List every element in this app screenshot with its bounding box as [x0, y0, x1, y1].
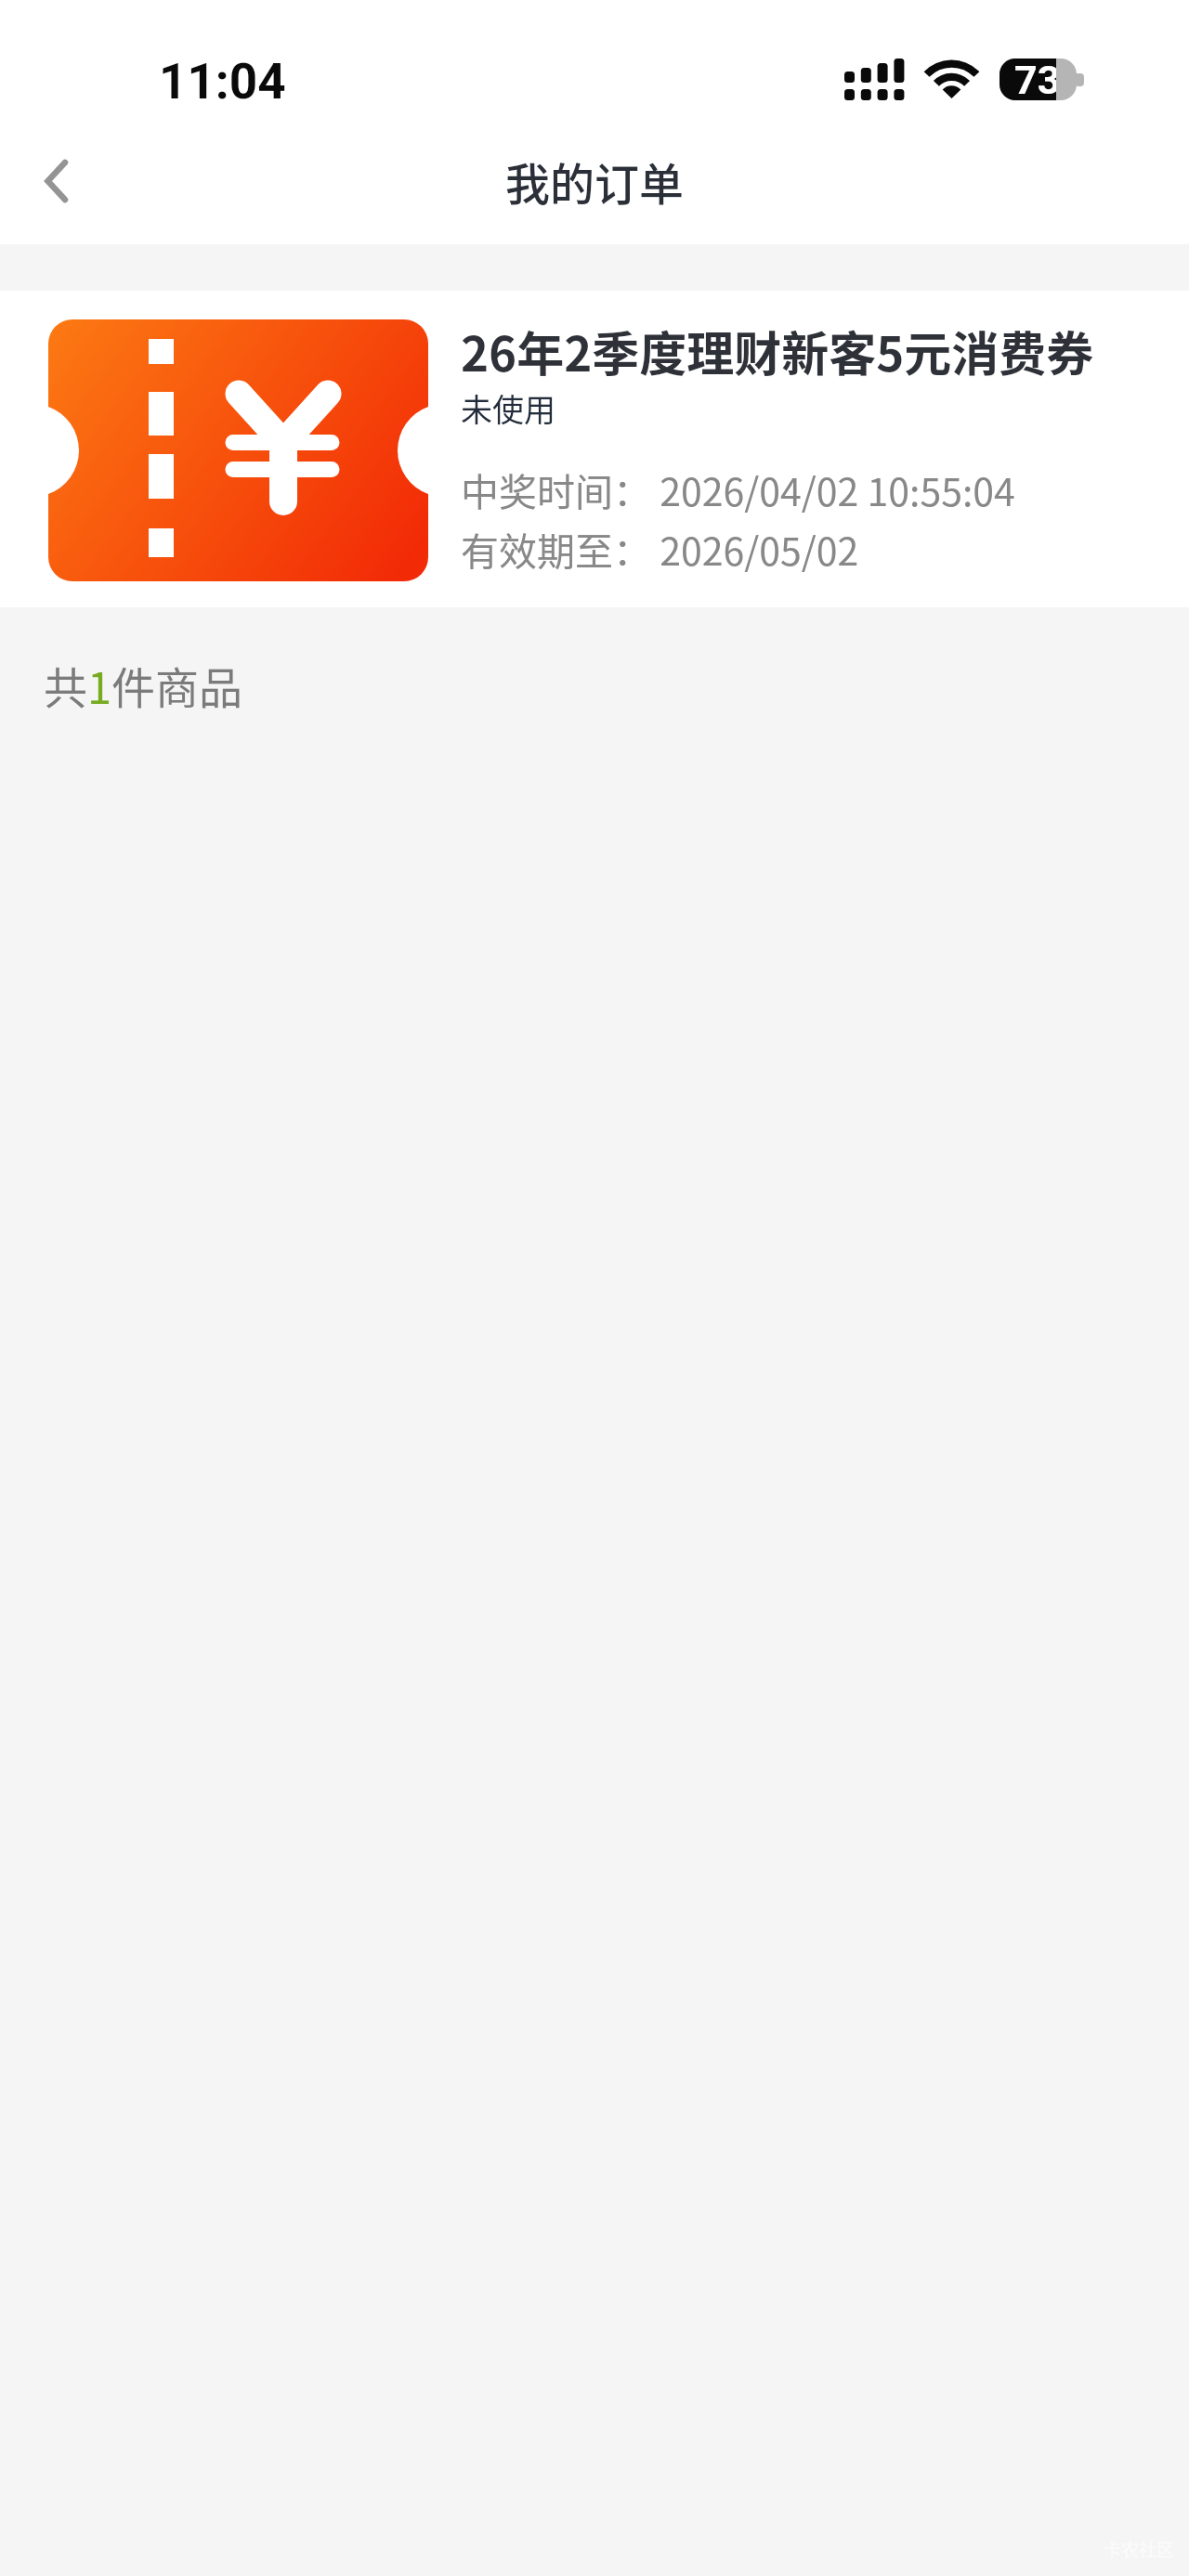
button[interactable]: 26年2季度理财新客5元消费券 [0, 291, 1189, 607]
staticText: 26年2季度理财新客5元消费券 [461, 317, 1094, 385]
staticText: 未使用 [461, 385, 555, 431]
staticText: 有效期至： 2026/05/02 [461, 521, 859, 576]
button[interactable]: Back [8, 135, 101, 228]
staticText: 共1件商品 [44, 653, 243, 716]
staticText: 中奖时间： 2026/04/02 10:55:04 [461, 462, 1015, 516]
staticText: 我的订单 [0, 149, 1189, 214]
staticText: 11:04 [159, 53, 286, 111]
staticText: 73 [1014, 59, 1056, 98]
